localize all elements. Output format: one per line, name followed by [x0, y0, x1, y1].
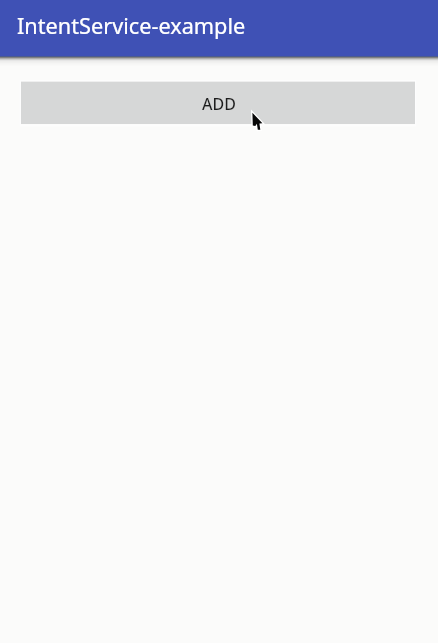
button[interactable]: ADD: [21, 82, 415, 124]
staticText: ADD: [202, 93, 236, 115]
staticText: IntentService-example: [17, 11, 246, 41]
